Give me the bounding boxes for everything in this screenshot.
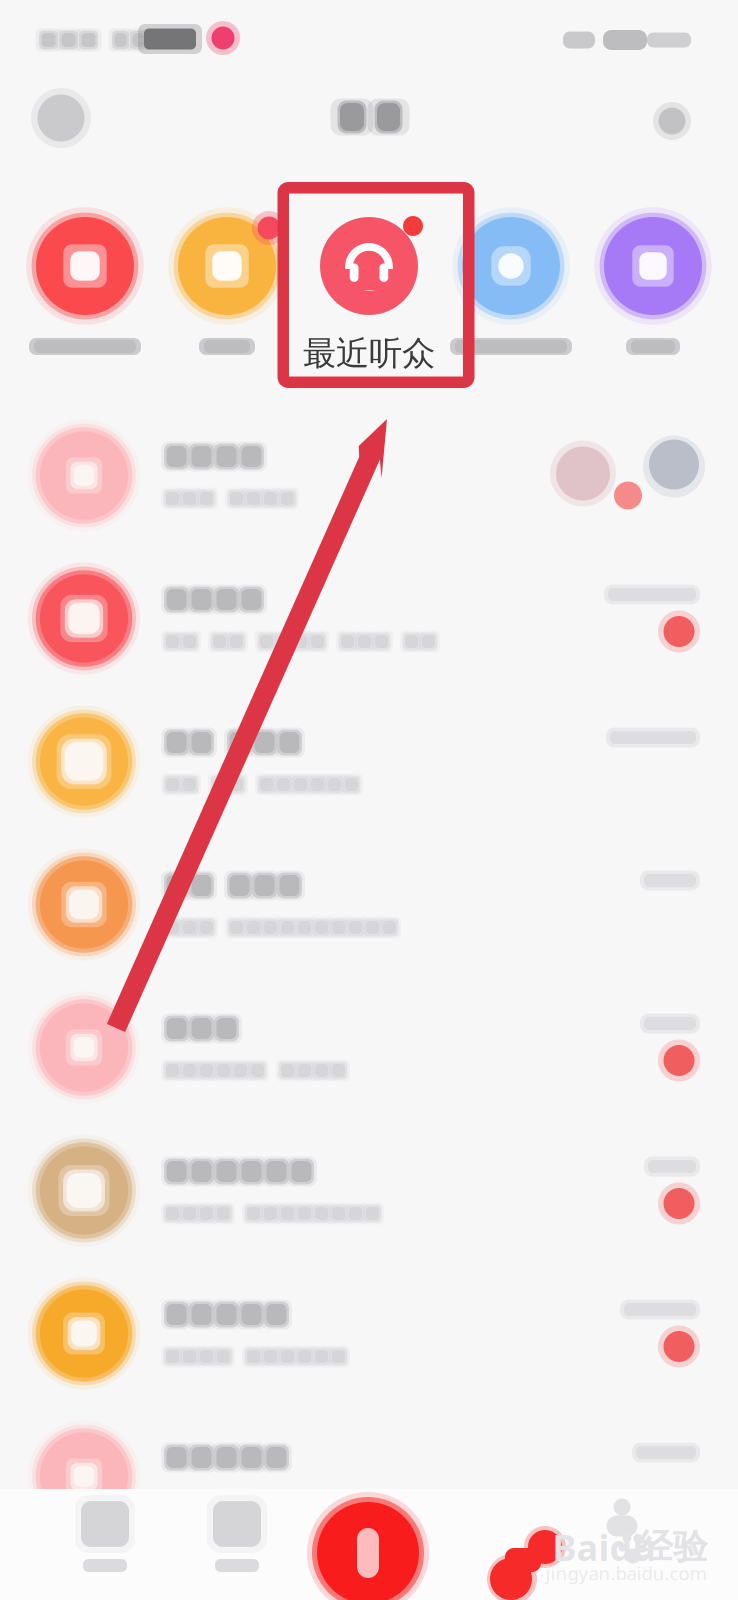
button[interactable]: Conversation — [0, 833, 738, 976]
button[interactable]: Profile — [25, 82, 97, 154]
button[interactable]: Conversation — [0, 690, 738, 833]
button[interactable]: Add — [642, 91, 702, 151]
button[interactable]: Go live — [278, 1488, 458, 1600]
button[interactable]: Shortcut — [156, 217, 298, 377]
button[interactable]: Conversation — [0, 1405, 738, 1548]
button[interactable]: Conversation — [0, 976, 738, 1119]
button[interactable]: Home — [40, 1495, 170, 1599]
button[interactable]: Discover — [172, 1495, 302, 1599]
button[interactable]: Conversation — [0, 1119, 738, 1262]
button[interactable]: Shortcut — [582, 217, 724, 377]
staticText: 最近听众 — [303, 333, 435, 374]
button[interactable]: Shortcut — [14, 217, 156, 377]
button[interactable]: Me — [567, 1495, 677, 1599]
button[interactable]: Conversation — [0, 1262, 738, 1405]
staticText: 经验 — [638, 1526, 708, 1568]
button[interactable]: Conversation — [0, 404, 738, 547]
staticText: jingyan.baidu.com — [545, 1561, 706, 1585]
button[interactable]: Messages — [467, 1512, 557, 1590]
button[interactable]: Conversation — [0, 547, 738, 690]
staticText: Baidu — [552, 1523, 655, 1571]
button[interactable]: 最近听众 — [298, 217, 440, 377]
button[interactable]: Shortcut — [440, 217, 582, 377]
